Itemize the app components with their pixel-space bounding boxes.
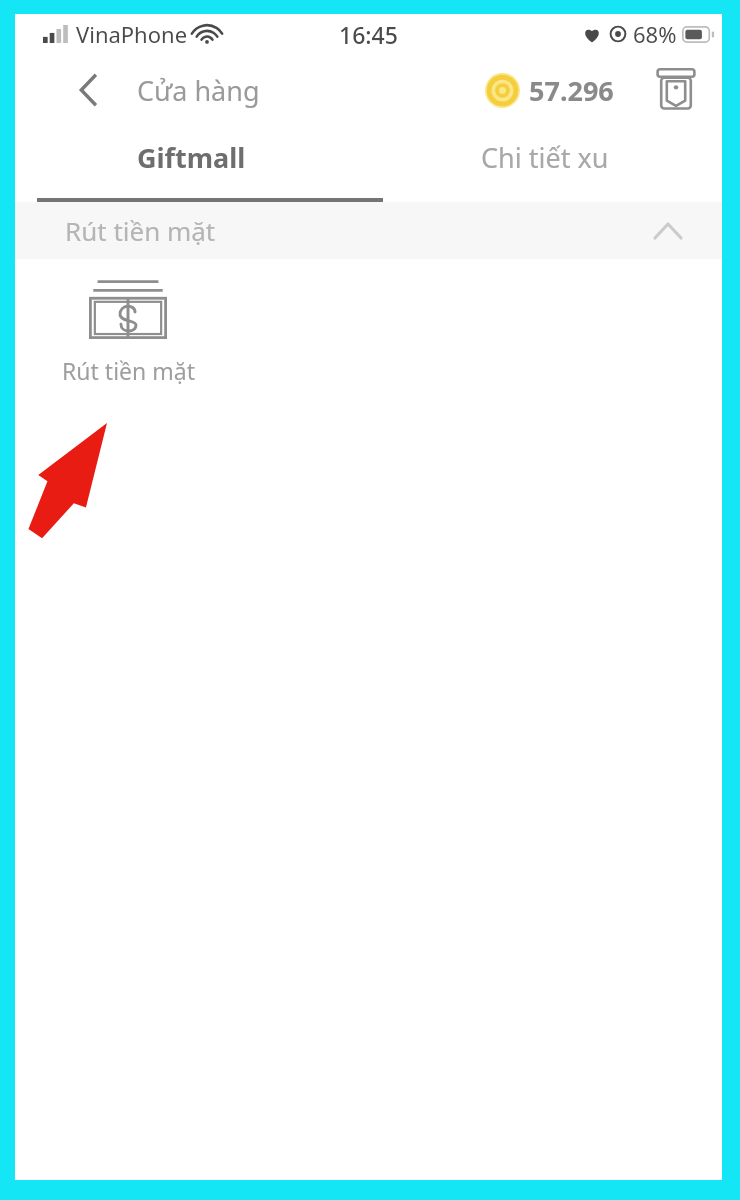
staticText: Cửa hàng: [137, 72, 260, 109]
staticText: 68%: [633, 19, 677, 49]
button[interactable]: Giftmall: [15, 126, 368, 202]
staticText: Giftmall: [137, 139, 246, 176]
button[interactable]: Rút tiền mặt: [15, 202, 722, 259]
staticText: Chi tiết xu: [481, 139, 609, 176]
staticText: Rút tiền mặt: [62, 355, 195, 386]
staticText: 57.296: [529, 72, 614, 109]
staticText: 16:45: [339, 19, 398, 50]
staticText: Rút tiền mặt: [65, 213, 216, 248]
button[interactable]: Back: [67, 69, 109, 111]
button[interactable]: Withdraw cash: [650, 64, 702, 116]
staticText: VinaPhone: [76, 19, 188, 49]
button[interactable]: Rút tiền mặt: [53, 277, 203, 386]
other: Collapse section: [652, 215, 684, 247]
button[interactable]: 57.296: [485, 72, 614, 109]
button[interactable]: Chi tiết xu: [368, 126, 722, 202]
